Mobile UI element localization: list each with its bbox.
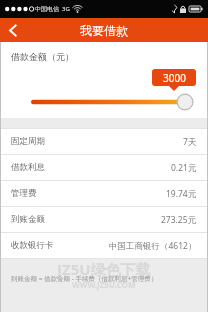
staticText: 到账金额 bbox=[11, 214, 45, 225]
button[interactable]: 借款利息 bbox=[0, 155, 208, 180]
staticText: 中国工商银行（4612） bbox=[109, 240, 197, 252]
staticText: 收款银行卡 bbox=[11, 240, 54, 251]
staticText: 我要借款 bbox=[80, 23, 128, 38]
staticText: WWW.JZ5U.COM bbox=[72, 279, 136, 290]
button[interactable]: 固定周期 bbox=[0, 129, 208, 154]
staticText: 273.25元 bbox=[161, 214, 197, 226]
staticText: 0.21元 bbox=[171, 162, 197, 174]
button[interactable]: 收款银行卡 bbox=[0, 233, 208, 258]
button[interactable]: 管理费 bbox=[0, 181, 208, 206]
staticText: 到账金额 = 借款金额 - 手续费（借款利息+管理费） bbox=[11, 274, 158, 283]
staticText: 借款金额（元） bbox=[11, 51, 74, 62]
staticText: 3G bbox=[62, 5, 70, 13]
staticText: JZ5U绿色下载 bbox=[57, 259, 151, 279]
staticText: 中国电信 bbox=[35, 5, 59, 13]
staticText: 借款利息 bbox=[11, 162, 45, 173]
staticText: 管理费 bbox=[11, 188, 37, 199]
staticText: 3000 bbox=[163, 71, 186, 85]
button[interactable]: 到账金额 bbox=[0, 207, 208, 232]
button[interactable]: Loan amount slider bbox=[0, 92, 208, 112]
button[interactable]: Back bbox=[0, 18, 26, 42]
staticText: 19.74元 bbox=[166, 188, 197, 200]
staticText: 7天 bbox=[183, 136, 197, 148]
staticText: 固定周期 bbox=[11, 136, 45, 147]
